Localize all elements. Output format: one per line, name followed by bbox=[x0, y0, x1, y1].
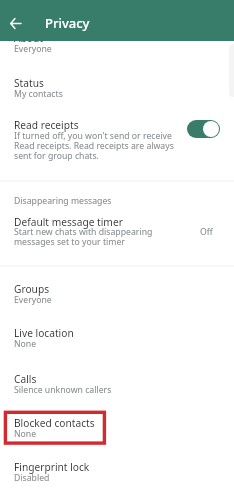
button[interactable]: Blocked contacts bbox=[0, 404, 234, 448]
staticText: Default message timer bbox=[14, 215, 123, 229]
button[interactable]: Status bbox=[0, 64, 234, 108]
button[interactable]: Back bbox=[4, 12, 27, 35]
staticText: Calls bbox=[14, 372, 37, 386]
button[interactable]: Calls bbox=[0, 360, 234, 404]
staticText: Everyone bbox=[14, 43, 52, 55]
staticText: Blocked contacts bbox=[14, 416, 95, 430]
staticText: Disappearing messages bbox=[14, 195, 112, 207]
button[interactable]: Fingerprint lock bbox=[0, 448, 234, 492]
staticText: About bbox=[14, 31, 43, 45]
button[interactable]: Default message timer bbox=[0, 207, 234, 257]
staticText: None bbox=[14, 428, 37, 440]
staticText: Start new chats with disappearing messag… bbox=[14, 226, 192, 248]
staticText: Fingerprint lock bbox=[14, 460, 90, 474]
staticText: Privacy bbox=[45, 14, 90, 32]
button[interactable]: Read receipts bbox=[0, 110, 234, 172]
staticText: Disabled bbox=[14, 472, 50, 484]
staticText: Silence unknown callers bbox=[14, 384, 112, 396]
button[interactable]: About bbox=[0, 30, 234, 55]
button[interactable]: Read receipts toggle bbox=[187, 120, 220, 138]
staticText: Read receipts bbox=[14, 118, 79, 132]
staticText: Status bbox=[14, 76, 44, 90]
staticText: My contacts bbox=[14, 88, 63, 100]
button[interactable]: Groups bbox=[0, 270, 234, 314]
staticText: Everyone bbox=[14, 294, 52, 306]
staticText: If turned off, you won't send or receive… bbox=[14, 130, 181, 162]
staticText: Live location bbox=[14, 326, 74, 340]
staticText: Groups bbox=[14, 282, 50, 296]
staticText: None bbox=[14, 338, 37, 350]
button[interactable]: Live location bbox=[0, 314, 234, 358]
staticText: Off bbox=[200, 226, 213, 238]
